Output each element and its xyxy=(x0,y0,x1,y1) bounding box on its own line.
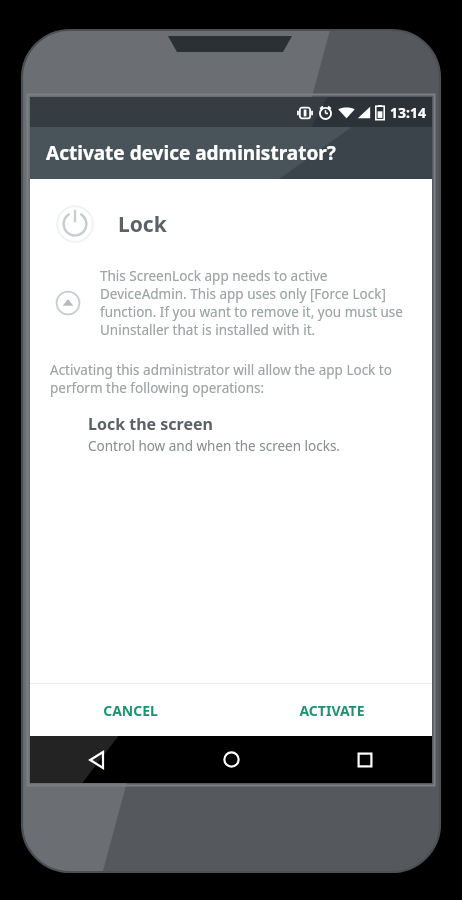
staticText: 13:14 xyxy=(390,103,426,122)
staticText: ACTIVATE xyxy=(299,701,365,720)
staticText: Activating this administrator will allow… xyxy=(50,361,414,397)
staticText: CANCEL xyxy=(103,701,158,720)
button[interactable]: Home xyxy=(164,736,298,783)
staticText: Lock xyxy=(118,210,167,239)
button[interactable]: Back xyxy=(30,736,164,783)
button[interactable]: Recent apps xyxy=(298,736,432,783)
staticText: Lock the screen xyxy=(88,413,213,435)
staticText: This ScreenLock app needs to active Devi… xyxy=(100,267,414,339)
button[interactable]: Collapse description xyxy=(48,283,88,323)
button[interactable]: CANCEL xyxy=(30,684,231,736)
staticText: Activate device administrator? xyxy=(46,140,336,166)
button[interactable]: ACTIVATE xyxy=(231,684,432,736)
staticText: Control how and when the screen locks. xyxy=(88,437,340,455)
